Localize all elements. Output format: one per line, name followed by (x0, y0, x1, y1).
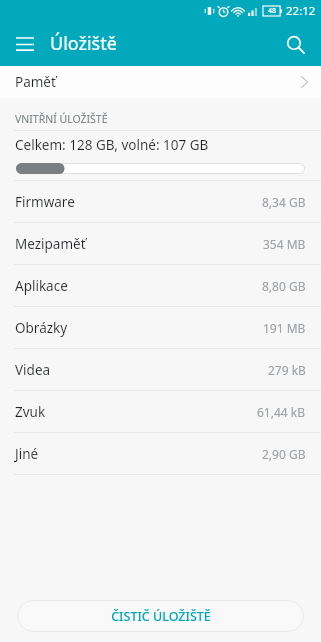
button[interactable]: Videa (0, 349, 321, 390)
button[interactable]: Obrázky (0, 307, 321, 348)
button[interactable]: Firmware (0, 181, 321, 222)
staticText: Zvuk (15, 403, 46, 421)
staticText: 48 (268, 6, 277, 16)
button[interactable]: Zvuk (0, 391, 321, 432)
button[interactable]: ČISTIČ ÚLOŽIŠTĚ (17, 600, 304, 632)
staticText: Aplikace (15, 277, 68, 295)
staticText: ČISTIČ ÚLOŽIŠTĚ (111, 608, 211, 625)
button[interactable]: Aplikace (0, 265, 321, 306)
button[interactable]: Paměť (0, 66, 321, 98)
staticText: Firmware (15, 193, 75, 211)
staticText: 191 MB (263, 320, 306, 336)
staticText: Obrázky (15, 319, 68, 337)
staticText: VNITŘNÍ ÚLOŽIŠTĚ (15, 112, 108, 126)
staticText: 8,80 GB (262, 278, 306, 294)
staticText: Celkem: 128 GB, volné: 107 GB (15, 136, 209, 154)
staticText: 2,90 GB (262, 446, 306, 462)
staticText: 61,44 kB (257, 404, 306, 420)
button[interactable]: Open navigation menu (5, 24, 45, 64)
button[interactable]: Mezipaměť (0, 223, 321, 264)
staticText: 279 kB (268, 362, 306, 378)
staticText: 354 MB (263, 236, 306, 252)
staticText: Paměť (15, 73, 56, 91)
staticText: Mezipaměť (15, 235, 86, 253)
staticText: 22:12 (286, 3, 316, 19)
staticText: 8,34 GB (262, 194, 306, 210)
button[interactable]: Jiné (0, 433, 321, 474)
button[interactable]: Search (274, 23, 316, 65)
staticText: Videa (15, 361, 51, 379)
staticText: Jiné (15, 445, 39, 463)
staticText: Úložiště (50, 31, 117, 56)
